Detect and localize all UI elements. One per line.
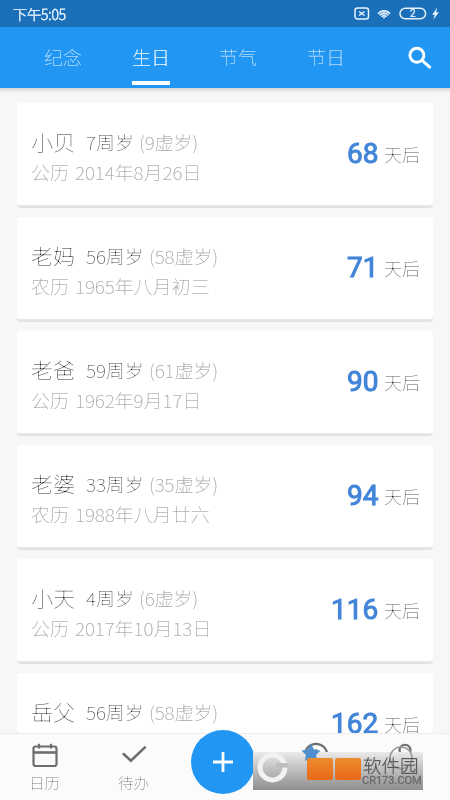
button[interactable]: 节气 xyxy=(195,27,281,88)
staticText: CR173.COM xyxy=(362,774,422,787)
staticText: 公历 xyxy=(31,158,70,186)
button[interactable]: 小贝 xyxy=(17,103,433,205)
button[interactable]: 老婆 xyxy=(17,445,433,547)
staticText: (58虚岁) xyxy=(149,242,219,270)
staticText: (6虚岁) xyxy=(139,584,199,612)
staticText: 1988年八月廿六 xyxy=(75,500,210,528)
staticText: 天后 xyxy=(384,141,420,167)
button[interactable]: 老妈 xyxy=(17,217,433,319)
staticText: (35虚岁) xyxy=(149,470,219,498)
staticText: 公历 xyxy=(31,614,70,642)
staticText: 天后 xyxy=(384,483,420,509)
staticText: 岳父 xyxy=(31,695,76,727)
staticText: 56周岁 xyxy=(86,698,144,726)
staticText: 天后 xyxy=(384,597,420,623)
staticText: 公历 xyxy=(31,386,70,414)
button[interactable]: Add new reminder xyxy=(191,730,255,794)
staticText: 2014年8月26日 xyxy=(75,158,202,186)
staticText: 162 xyxy=(331,707,379,733)
staticText: 天后 xyxy=(384,255,420,281)
staticText: 4周岁 xyxy=(86,584,134,612)
button[interactable]: 提醒日 xyxy=(276,734,356,800)
staticText: 小天 xyxy=(31,581,76,613)
staticText: 农历 xyxy=(31,500,70,528)
staticText: 2017年10月13日 xyxy=(75,614,212,642)
staticText: 小贝 xyxy=(31,125,76,157)
staticText: 农历 xyxy=(31,272,70,300)
button[interactable]: 待办 xyxy=(94,734,174,800)
staticText: 待办 xyxy=(118,771,150,793)
button[interactable]: 我的 xyxy=(365,734,445,800)
staticText: 生日 xyxy=(132,43,171,71)
staticText: 90 xyxy=(347,365,379,398)
button[interactable]: 小天 xyxy=(17,559,433,661)
staticText: 2 xyxy=(410,8,416,20)
staticText: 节气 xyxy=(219,43,258,71)
button[interactable]: 老爸 xyxy=(17,331,433,433)
staticText: 提醒日 xyxy=(293,771,340,793)
button[interactable]: 岳父 xyxy=(17,673,433,733)
staticText: 68 xyxy=(347,137,379,170)
staticText: 天后 xyxy=(384,711,420,733)
staticText: 7周岁 xyxy=(86,128,134,156)
staticText: 日历 xyxy=(29,771,61,793)
staticText: 116 xyxy=(331,593,379,626)
staticText: 71 xyxy=(347,251,379,284)
staticText: 老妈 xyxy=(31,239,76,271)
staticText: (58虚岁) xyxy=(149,698,219,726)
staticText: (61虚岁) xyxy=(149,356,219,384)
staticText: 下午5:05 xyxy=(13,4,67,24)
staticText: 56周岁 xyxy=(86,242,144,270)
staticText: 94 xyxy=(347,479,379,512)
staticText: 老婆 xyxy=(31,467,76,499)
staticText: 节日 xyxy=(307,43,346,71)
staticText: (9虚岁) xyxy=(139,128,199,156)
staticText: 59周岁 xyxy=(86,356,144,384)
staticText: 1962年9月17日 xyxy=(75,386,202,414)
staticText: 我的 xyxy=(389,771,421,793)
button[interactable]: 节日 xyxy=(283,27,369,88)
staticText: 纪念 xyxy=(44,43,83,71)
staticText: 33周岁 xyxy=(86,470,144,498)
staticText: 老爸 xyxy=(31,353,76,385)
button[interactable]: 生日 xyxy=(108,27,194,88)
staticText: 软件园 xyxy=(363,752,419,779)
button[interactable]: Search xyxy=(396,33,440,77)
button[interactable]: 纪念 xyxy=(20,27,106,88)
staticText: 1965年八月初三 xyxy=(75,272,210,300)
staticText: 天后 xyxy=(384,369,420,395)
button[interactable]: 日历 xyxy=(5,734,85,800)
